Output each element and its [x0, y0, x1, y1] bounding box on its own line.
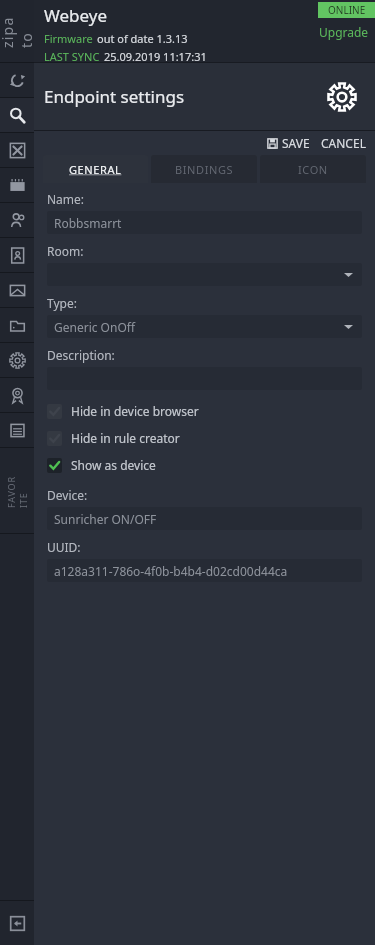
- staticText: Generic OnOff: [54, 319, 136, 335]
- button[interactable]: CANCEL: [321, 135, 366, 151]
- staticText: ONLINE: [328, 3, 366, 17]
- button[interactable]: Rail item 1: [0, 98, 34, 132]
- button[interactable]: Show as device: [47, 457, 362, 473]
- staticText: zipato: [0, 14, 36, 48]
- button[interactable]: FAVORITE: [0, 448, 34, 533]
- staticText: Name:: [47, 191, 85, 207]
- staticText: Endpoint settings: [44, 85, 185, 108]
- button[interactable]: Rail item 5: [0, 238, 34, 272]
- button[interactable]: Rail item 6: [0, 273, 34, 307]
- staticText: Description:: [47, 347, 115, 363]
- staticText: a128a311-786o-4f0b-b4b4-d02cd00d44ca: [54, 563, 288, 579]
- button[interactable]: Log out: [0, 901, 34, 945]
- button[interactable]: Rail item 0: [0, 63, 34, 97]
- button[interactable]: Upgrade: [319, 24, 375, 40]
- button[interactable]: Rail item 2: [0, 133, 34, 167]
- staticText: Upgrade: [319, 24, 369, 40]
- staticText: Firmware: [44, 31, 93, 46]
- staticText: ICON: [298, 162, 328, 177]
- staticText: Hide in rule creator: [71, 430, 180, 446]
- staticText: Robbsmarrt: [54, 215, 122, 231]
- button[interactable]: a128a311-786o-4f0b-b4b4-d02cd00d44ca: [47, 559, 362, 582]
- staticText: Room:: [47, 243, 84, 259]
- button[interactable]: Rail item 3: [0, 168, 34, 202]
- button[interactable]: Rail item 9: [0, 378, 34, 412]
- staticText: Device:: [47, 487, 88, 503]
- staticText: LAST SYNC: [44, 49, 100, 62]
- staticText: UUID:: [47, 539, 81, 555]
- staticText: Type:: [47, 295, 77, 311]
- button[interactable]: Hide in device browser: [47, 403, 362, 419]
- button[interactable]: Hide in rule creator: [47, 430, 362, 446]
- staticText: SAVE: [282, 135, 310, 151]
- button[interactable]: Rail item 8: [0, 343, 34, 377]
- staticText: GENERAL: [69, 162, 122, 177]
- button[interactable]: Rail item 7: [0, 308, 34, 342]
- staticText: BINDINGS: [175, 162, 234, 177]
- button[interactable]: Settings: [321, 76, 363, 118]
- button[interactable]: Rail item 4: [0, 203, 34, 237]
- button[interactable]: Rail item 10: [0, 413, 34, 447]
- staticText: Show as device: [71, 457, 156, 473]
- staticText: 25.09.2019 11:17:31: [104, 49, 207, 62]
- staticText: Sunricher ON/OFF: [54, 511, 157, 527]
- button[interactable]: Generic OnOff: [47, 315, 362, 338]
- staticText: Hide in device browser: [71, 403, 199, 419]
- button[interactable]: Sunricher ON/OFF: [47, 507, 362, 530]
- staticText: out of date 1.3.13: [97, 31, 188, 46]
- button[interactable]: GENERAL: [43, 155, 148, 183]
- button[interactable]: SAVE: [265, 135, 312, 151]
- button[interactable]: [47, 263, 362, 286]
- button[interactable]: ONLINE: [318, 2, 375, 18]
- button[interactable]: BINDINGS: [151, 155, 257, 183]
- button[interactable]: ICON: [260, 155, 366, 183]
- staticText: FAVORITE: [5, 474, 29, 508]
- staticText: Webeye: [44, 4, 108, 27]
- staticText: CANCEL: [321, 135, 366, 151]
- button[interactable]: Robbsmarrt: [47, 211, 362, 234]
